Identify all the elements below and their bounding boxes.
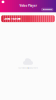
staticText: Video Player bbox=[19, 4, 37, 7]
staticText: Create Your Own bbox=[4, 17, 21, 20]
staticText: GET PREMIUM bbox=[43, 9, 52, 10]
button[interactable]: GET PREMIUM bbox=[41, 8, 53, 11]
button[interactable]: Create Your Own bbox=[1, 15, 55, 22]
staticText: Your videos will appear here bbox=[18, 67, 38, 69]
